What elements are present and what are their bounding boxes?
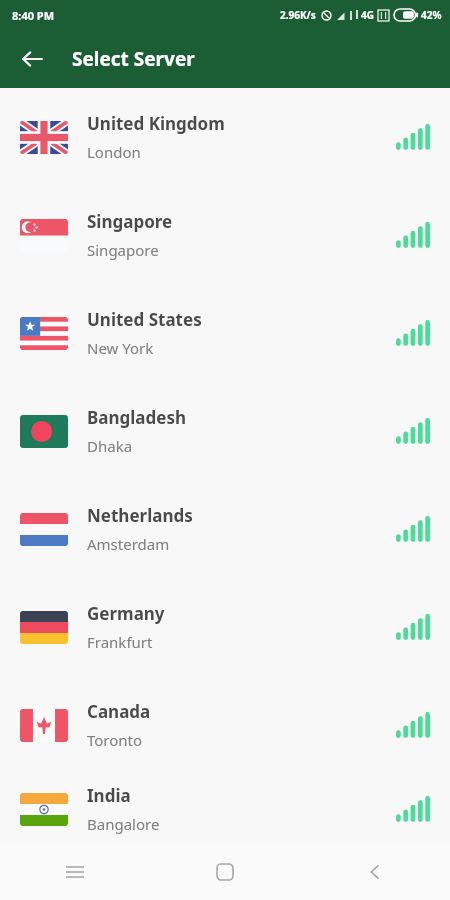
button[interactable]: Home	[150, 844, 300, 900]
staticText: Singapore	[87, 210, 173, 233]
staticText: 4G	[361, 8, 374, 22]
button[interactable]: Netherlands	[0, 480, 450, 578]
staticText: Amsterdam	[87, 534, 170, 554]
button[interactable]: Bangladesh	[0, 382, 450, 480]
staticText: Singapore	[87, 240, 159, 260]
staticText: London	[87, 142, 141, 162]
staticText: 2.96K/s	[280, 8, 316, 22]
button[interactable]: United States	[0, 284, 450, 382]
staticText: United States	[87, 308, 202, 331]
staticText: Bangladesh	[87, 406, 187, 429]
button[interactable]: India	[0, 774, 450, 844]
button[interactable]: Canada	[0, 676, 450, 774]
staticText: Germany	[87, 602, 165, 625]
staticText: New York	[87, 338, 154, 358]
staticText: Select Server	[72, 46, 195, 72]
staticText: Dhaka	[87, 436, 133, 456]
staticText: Canada	[87, 700, 151, 723]
staticText: Frankfurt	[87, 632, 153, 652]
staticText: India	[87, 784, 131, 807]
button[interactable]: Back	[300, 844, 450, 900]
staticText: 8:40 PM	[12, 8, 55, 23]
staticText: Toronto	[87, 730, 143, 750]
button[interactable]: Germany	[0, 578, 450, 676]
button[interactable]: Back	[10, 37, 54, 81]
staticText: Netherlands	[87, 504, 193, 527]
button[interactable]: Singapore	[0, 186, 450, 284]
button[interactable]: United Kingdom	[0, 88, 450, 186]
staticText: Bangalore	[87, 814, 160, 834]
button[interactable]: Recent apps	[0, 844, 150, 900]
staticText: 42%	[421, 8, 442, 22]
staticText: United Kingdom	[87, 112, 225, 135]
